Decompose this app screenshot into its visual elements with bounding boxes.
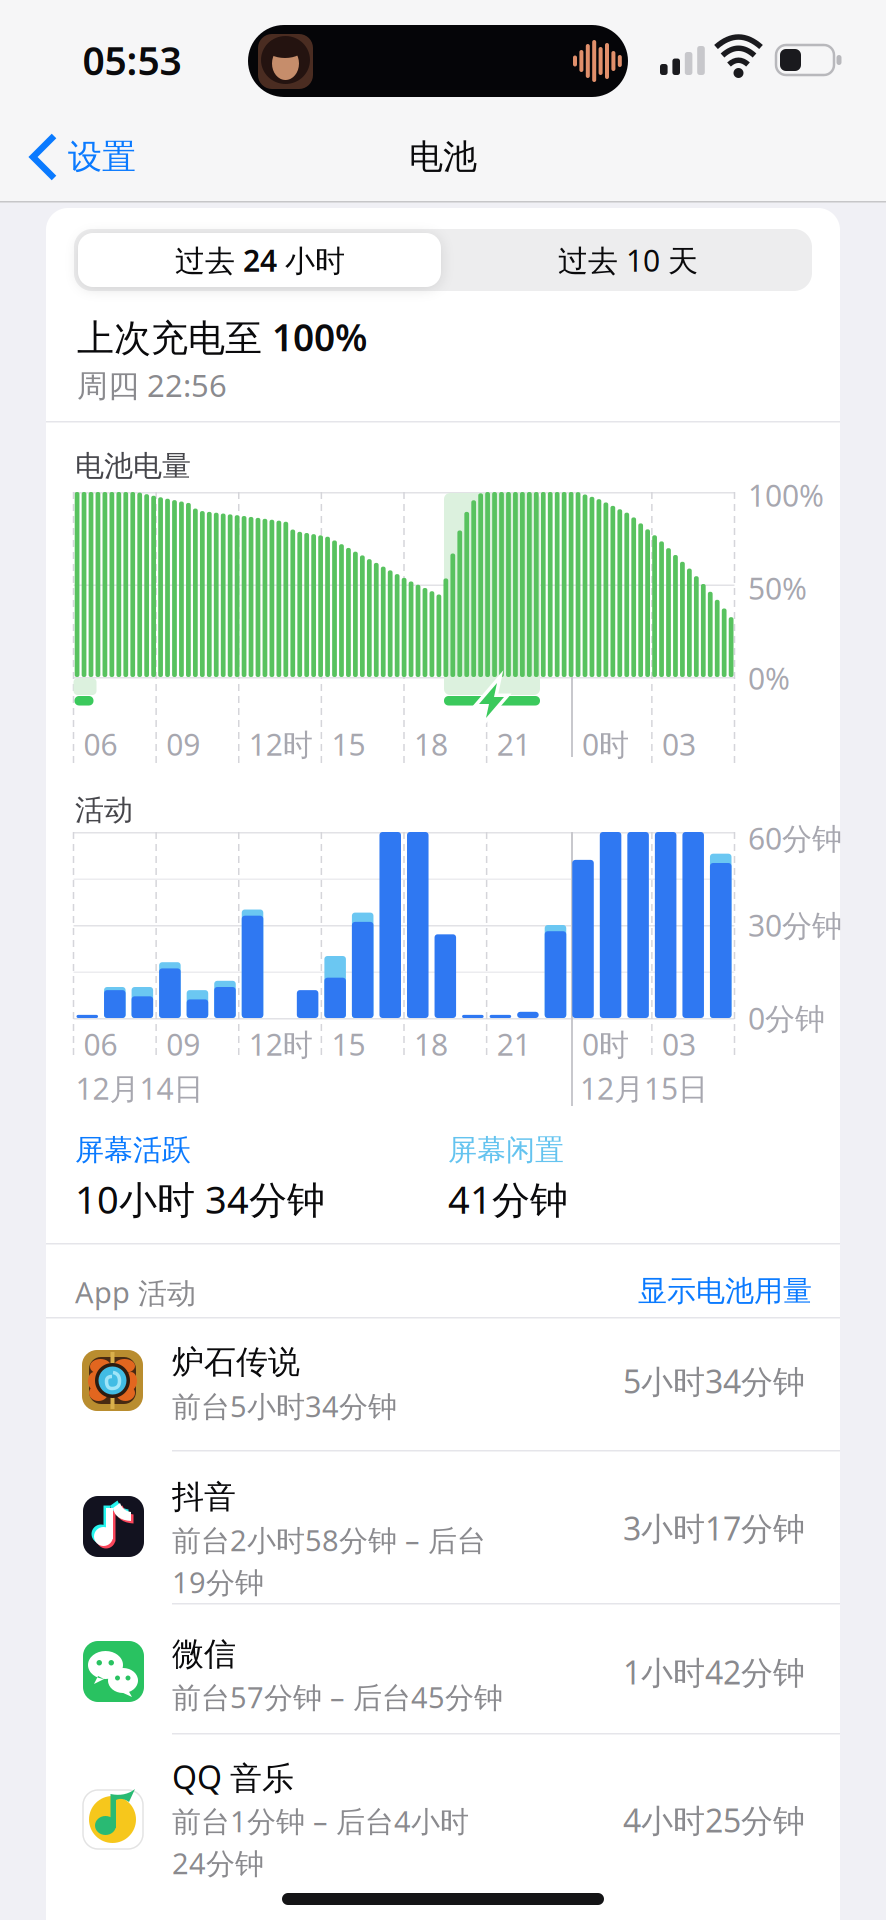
staticText: 1小时42分钟 xyxy=(623,1650,805,1694)
staticText: 18 xyxy=(414,724,448,764)
staticText: 抖音 xyxy=(172,1477,236,1517)
staticText: 显示电池用量 xyxy=(638,1273,812,1309)
staticText: 12时 xyxy=(249,724,313,764)
staticText: 21 xyxy=(497,1024,531,1064)
staticText: 09 xyxy=(166,1024,200,1064)
staticText: 12月14日 xyxy=(75,1068,203,1108)
staticText: 03 xyxy=(662,1024,696,1064)
staticText: 21 xyxy=(497,724,531,764)
staticText: 4小时25分钟 xyxy=(623,1798,805,1842)
staticText: 活动 xyxy=(75,792,133,828)
staticText: QQ 音乐 xyxy=(172,1755,294,1799)
staticText: 5小时34分钟 xyxy=(623,1359,805,1403)
staticText: 24分钟 xyxy=(172,1843,264,1883)
staticText: 41分钟 xyxy=(448,1173,568,1225)
staticText: 设置 xyxy=(68,136,136,178)
staticText: 屏幕闲置 xyxy=(448,1132,564,1168)
staticText: 12时 xyxy=(249,1024,313,1064)
staticText: 电池 xyxy=(409,136,477,178)
staticText: App 活动 xyxy=(75,1272,196,1312)
staticText: 前台1分钟 – 后台4小时 xyxy=(172,1801,469,1841)
staticText: 60分钟 xyxy=(748,818,842,858)
staticText: 15 xyxy=(331,724,365,764)
staticText: 0分钟 xyxy=(748,998,825,1038)
staticText: 30分钟 xyxy=(748,905,842,945)
staticText: 50% xyxy=(748,568,807,608)
staticText: 03 xyxy=(662,724,696,764)
staticText: 0时 xyxy=(582,1024,629,1064)
staticText: 前台57分钟 – 后台45分钟 xyxy=(172,1677,503,1717)
staticText: 18 xyxy=(414,1024,448,1064)
staticText: 上次充电至 100% xyxy=(77,312,367,362)
staticText: 过去 10 天 xyxy=(558,240,698,280)
staticText: 06 xyxy=(83,1024,117,1064)
staticText: 前台2小时58分钟 – 后台 xyxy=(172,1520,486,1560)
staticText: 周四 22:56 xyxy=(77,364,227,406)
staticText: 炉石传说 xyxy=(172,1342,300,1382)
staticText: 100% xyxy=(748,475,824,515)
staticText: 屏幕活跃 xyxy=(75,1132,191,1168)
staticText: 0% xyxy=(748,658,790,698)
staticText: 06 xyxy=(83,724,117,764)
staticText: 过去 24 小时 xyxy=(175,240,345,280)
staticText: 10小时 34分钟 xyxy=(75,1173,325,1225)
staticText: 09 xyxy=(166,724,200,764)
staticText: 前台5小时34分钟 xyxy=(172,1386,397,1426)
staticText: 电池电量 xyxy=(75,448,191,484)
staticText: 05:53 xyxy=(82,33,181,86)
staticText: 3小时17分钟 xyxy=(623,1506,805,1550)
staticText: 12月15日 xyxy=(580,1068,708,1108)
staticText: 19分钟 xyxy=(172,1562,264,1602)
staticText: 0时 xyxy=(582,724,629,764)
staticText: 15 xyxy=(331,1024,365,1064)
staticText: 微信 xyxy=(172,1634,236,1674)
